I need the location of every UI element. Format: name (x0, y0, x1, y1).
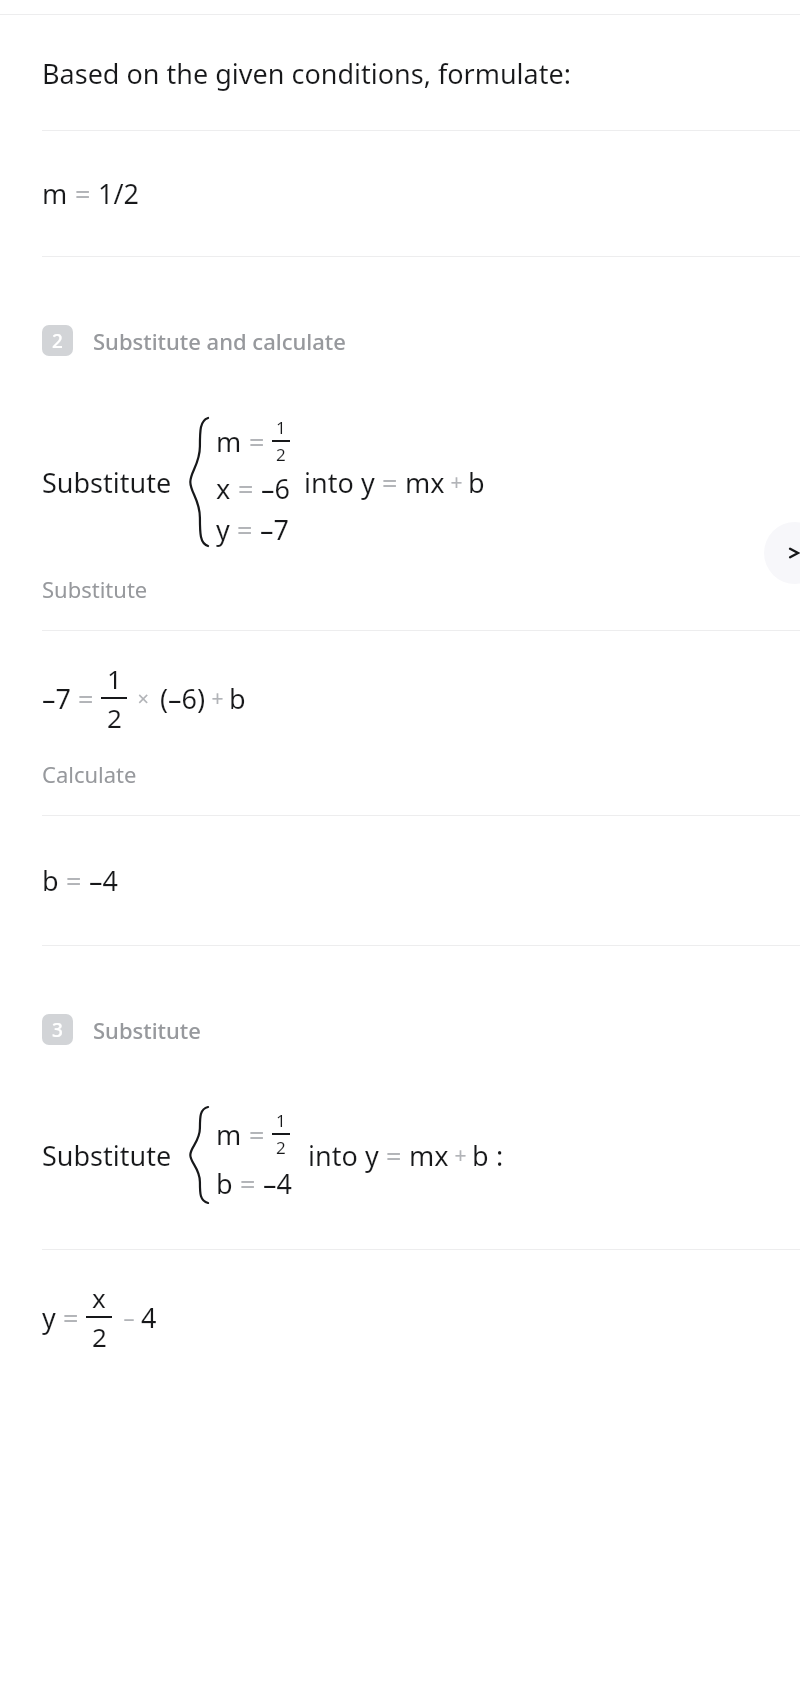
staticText: x (216, 470, 231, 507)
staticText: 2 (52, 328, 63, 354)
staticText: y (216, 511, 230, 548)
button[interactable]: Calculate (0, 749, 800, 815)
staticText: 1 (276, 1109, 286, 1132)
staticText: + (449, 1141, 472, 1170)
staticText: into (308, 1137, 365, 1174)
button[interactable]: 2 (0, 319, 800, 362)
staticText: m (216, 1116, 242, 1153)
staticText: 1 (107, 661, 122, 696)
staticText: 1 (276, 416, 286, 439)
staticText: = (233, 1165, 263, 1202)
staticText: b (472, 1137, 489, 1174)
staticText: (–6) (160, 680, 206, 717)
staticText: + (206, 684, 229, 713)
button[interactable]: Substitute (0, 416, 800, 548)
staticText: = (231, 470, 261, 507)
staticText: = (230, 511, 260, 548)
staticText: y (365, 1137, 379, 1174)
staticText: y (361, 464, 375, 501)
staticText: = (59, 862, 89, 899)
button[interactable]: Based on the given conditions, formulate… (0, 15, 800, 130)
staticText: Calculate (42, 759, 137, 789)
staticText: y (42, 1299, 56, 1336)
button[interactable]: 3 (0, 1008, 800, 1051)
staticText: = (379, 1137, 409, 1174)
button[interactable]: Substitute (0, 1107, 800, 1203)
button[interactable]: b (0, 816, 800, 945)
staticText: b (229, 680, 246, 717)
staticText: b (42, 862, 59, 899)
staticText: Substitute (42, 464, 172, 501)
button[interactable]: y (0, 1250, 800, 1380)
button[interactable]: –7 (0, 631, 800, 749)
staticText: : (489, 1137, 504, 1174)
staticText: 1/2 (98, 175, 139, 212)
staticText: b (216, 1165, 233, 1202)
staticText: – (112, 1302, 141, 1332)
staticText: –7 (260, 511, 289, 548)
staticText: mx (409, 1137, 449, 1174)
staticText: 2 (107, 700, 122, 735)
staticText: into (304, 464, 361, 501)
staticText: Substitute (42, 574, 148, 604)
staticText: = (56, 1299, 86, 1336)
staticText: –4 (263, 1165, 292, 1202)
staticText: 4 (141, 1299, 157, 1336)
staticText: = (68, 175, 98, 212)
staticText: 2 (276, 1136, 286, 1159)
button[interactable]: m (0, 131, 800, 256)
staticText: Substitute and calculate (93, 326, 346, 356)
staticText: = (242, 423, 272, 460)
staticText: m (42, 175, 68, 212)
staticText: 2 (92, 1319, 107, 1354)
staticText: Substitute (42, 1137, 172, 1174)
staticText: + (445, 468, 468, 497)
button[interactable]: Next (764, 522, 800, 584)
staticText: –6 (261, 470, 290, 507)
staticText: –4 (89, 862, 118, 899)
staticText: = (375, 464, 405, 501)
staticText: = (242, 1116, 272, 1153)
staticText: Based on the given conditions, formulate… (42, 55, 571, 92)
staticText: × (127, 685, 160, 712)
staticText: –7 (42, 680, 71, 717)
staticText: = (71, 680, 101, 717)
staticText: m (216, 423, 242, 460)
staticText: 3 (52, 1017, 63, 1043)
staticText: b (468, 464, 485, 501)
staticText: x (92, 1280, 106, 1315)
button[interactable]: Substitute (0, 574, 800, 630)
staticText: Substitute (93, 1015, 201, 1045)
staticText: mx (405, 464, 445, 501)
staticText: 2 (276, 443, 286, 466)
